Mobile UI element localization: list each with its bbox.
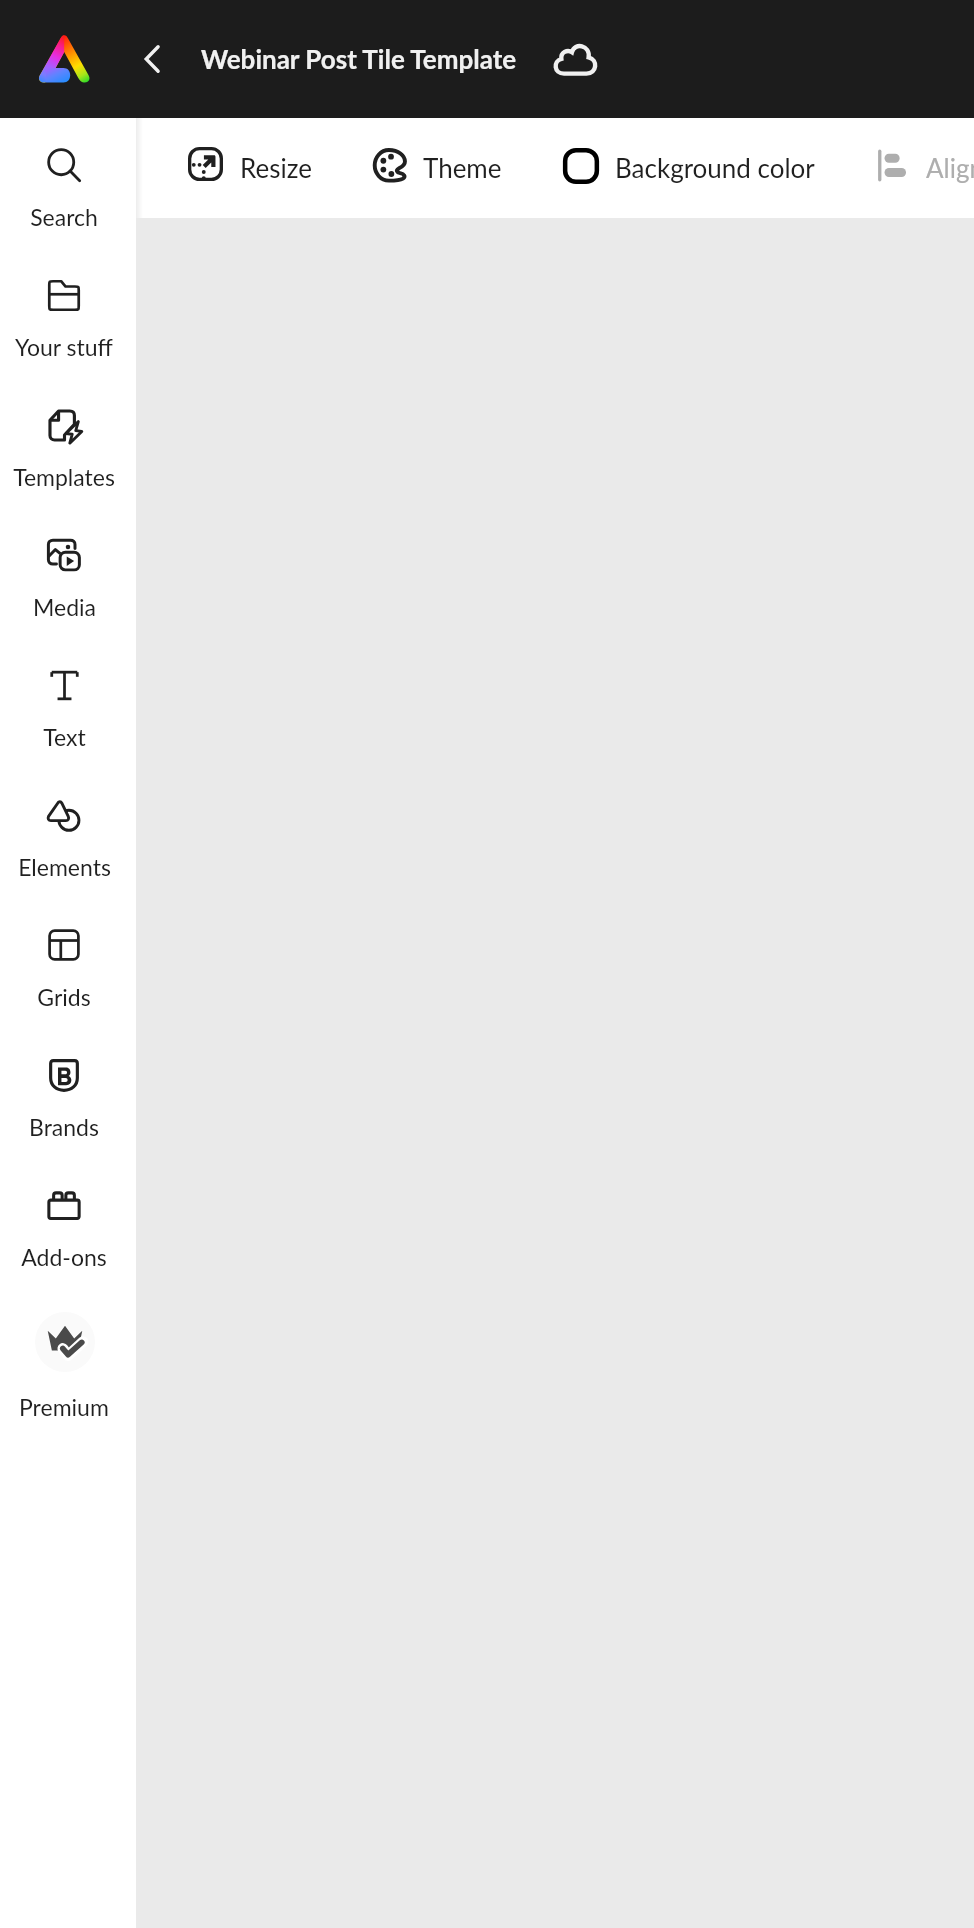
staticText: Media bbox=[33, 593, 96, 621]
button[interactable]: Back bbox=[124, 31, 180, 87]
button[interactable]: Theme bbox=[359, 118, 438, 218]
button[interactable]: Brands bbox=[0, 1023, 136, 1127]
button[interactable]: Templates bbox=[0, 373, 136, 477]
button[interactable]: Your stuff bbox=[0, 243, 136, 347]
staticText: Premium bbox=[19, 1393, 109, 1421]
staticText: Add-ons bbox=[21, 1243, 107, 1271]
staticText: Text bbox=[43, 723, 86, 751]
staticText: Theme bbox=[423, 152, 502, 183]
button[interactable]: Align bbox=[863, 118, 921, 218]
button[interactable]: Resize bbox=[174, 118, 246, 218]
staticText: Your stuff bbox=[15, 333, 113, 361]
staticText: Grids bbox=[37, 983, 91, 1011]
button[interactable]: Adobe Express home bbox=[30, 29, 98, 89]
button[interactable]: Saved to cloud bbox=[547, 31, 603, 87]
button[interactable]: Elements bbox=[0, 763, 136, 867]
staticText: Elements bbox=[18, 853, 111, 881]
staticText: Brands bbox=[29, 1113, 99, 1141]
staticText: Resize bbox=[240, 152, 312, 183]
staticText: Templates bbox=[13, 463, 115, 491]
button[interactable]: Premium bbox=[0, 1290, 136, 1402]
button[interactable]: Media bbox=[0, 503, 136, 607]
button[interactable]: Add-ons bbox=[0, 1153, 136, 1257]
staticText: Webinar Post Tile Template bbox=[201, 43, 517, 74]
button[interactable]: Grids bbox=[0, 893, 136, 997]
button[interactable]: Search bbox=[0, 113, 136, 217]
staticText: Background color bbox=[615, 152, 815, 183]
button[interactable]: Text bbox=[0, 633, 136, 737]
staticText: Search bbox=[30, 203, 98, 231]
staticText: Align bbox=[926, 152, 974, 183]
button[interactable]: Background color bbox=[549, 118, 749, 218]
